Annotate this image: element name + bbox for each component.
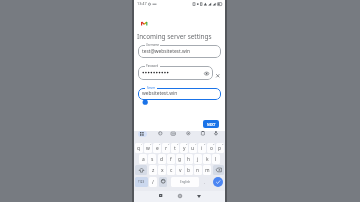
staticText: k: [206, 156, 209, 163]
staticText: q: [137, 145, 141, 152]
button[interactable]: [138, 131, 147, 137]
button[interactable]: [201, 131, 205, 136]
button[interactable]: [214, 131, 218, 136]
staticText: z: [152, 167, 155, 174]
button[interactable]: [158, 131, 163, 136]
button[interactable]: [159, 177, 167, 187]
staticText: NEXT: [207, 122, 216, 127]
button[interactable]: x: [158, 165, 166, 175]
button[interactable]: l: [212, 154, 220, 164]
staticText: h: [187, 156, 191, 163]
button[interactable]: [138, 88, 221, 100]
staticText: 6: [186, 143, 188, 146]
button[interactable]: o: [207, 143, 215, 153]
staticText: m: [205, 167, 210, 174]
staticText: c: [170, 167, 173, 174]
button[interactable]: [213, 177, 223, 187]
button[interactable]: .: [201, 177, 209, 187]
button[interactable]: [138, 66, 213, 80]
staticText: s: [151, 156, 154, 163]
button[interactable]: r: [162, 143, 170, 153]
staticText: 13:47: [137, 1, 147, 6]
staticText: p: [218, 145, 222, 152]
staticText: 0: [222, 143, 224, 146]
staticText: b: [187, 167, 191, 174]
staticText: x: [161, 167, 164, 174]
button[interactable]: k: [203, 154, 211, 164]
staticText: 3: [159, 143, 161, 146]
staticText: i: [201, 145, 203, 152]
button[interactable]: a: [139, 154, 147, 164]
staticText: websitetest.win: [142, 90, 178, 97]
button[interactable]: [135, 165, 147, 175]
staticText: g: [178, 156, 182, 163]
staticText: r: [165, 145, 168, 152]
staticText: 4: [168, 143, 170, 146]
staticText: Incoming server settings: [137, 32, 212, 41]
staticText: English: [180, 180, 191, 184]
staticText: d: [160, 156, 164, 163]
staticText: l: [215, 156, 217, 163]
button[interactable]: d: [158, 154, 166, 164]
button[interactable]: i: [198, 143, 206, 153]
button[interactable]: q: [135, 143, 143, 153]
staticText: v: [179, 167, 182, 174]
staticText: .: [204, 179, 206, 185]
staticText: Username: [146, 43, 160, 47]
button[interactable]: v: [176, 165, 184, 175]
button[interactable]: [139, 168, 144, 173]
staticText: /: [152, 179, 154, 186]
staticText: test@websitetest.win: [142, 48, 190, 55]
button[interactable]: e: [153, 143, 161, 153]
staticText: t: [174, 145, 176, 152]
staticText: w: [146, 145, 150, 152]
staticText: 1: [141, 143, 143, 146]
button[interactable]: w: [144, 143, 152, 153]
button[interactable]: ?123: [135, 177, 148, 187]
staticText: 5: [177, 143, 179, 146]
staticText: f: [170, 156, 172, 163]
staticText: 2: [150, 143, 152, 146]
button[interactable]: English: [171, 177, 199, 187]
staticText: u: [191, 145, 195, 152]
button[interactable]: /: [149, 177, 157, 187]
button[interactable]: m: [203, 165, 211, 175]
staticText: o: [210, 145, 213, 152]
button[interactable]: j: [194, 154, 202, 164]
button[interactable]: [216, 74, 220, 78]
button[interactable]: [216, 168, 222, 172]
button[interactable]: [204, 71, 209, 76]
button[interactable]: f: [167, 154, 175, 164]
button[interactable]: c: [167, 165, 175, 175]
staticText: j: [197, 156, 199, 163]
button[interactable]: b: [185, 165, 193, 175]
button[interactable]: h: [185, 154, 193, 164]
button[interactable]: y: [180, 143, 188, 153]
staticText: 8: [204, 143, 206, 146]
staticText: ?123: [138, 180, 145, 184]
button[interactable]: NEXT: [203, 120, 219, 128]
button[interactable]: [197, 195, 201, 198]
button[interactable]: [186, 131, 191, 136]
staticText: Server: [147, 86, 156, 90]
staticText: a: [142, 156, 145, 163]
staticText: Password: [146, 64, 159, 68]
button[interactable]: g: [176, 154, 184, 164]
button[interactable]: [171, 132, 176, 136]
button[interactable]: u: [189, 143, 197, 153]
button[interactable]: [159, 194, 162, 197]
button[interactable]: p: [216, 143, 224, 153]
staticText: e: [156, 145, 159, 152]
button[interactable]: z: [149, 165, 157, 175]
staticText: 9: [213, 143, 215, 146]
staticText: 7: [195, 143, 197, 146]
button[interactable]: [138, 45, 221, 58]
button[interactable]: s: [148, 154, 156, 164]
staticText: n: [196, 167, 200, 174]
button[interactable]: t: [171, 143, 179, 153]
button[interactable]: n: [194, 165, 202, 175]
button[interactable]: [178, 194, 182, 198]
button[interactable]: [213, 165, 224, 175]
staticText: y: [183, 145, 186, 152]
